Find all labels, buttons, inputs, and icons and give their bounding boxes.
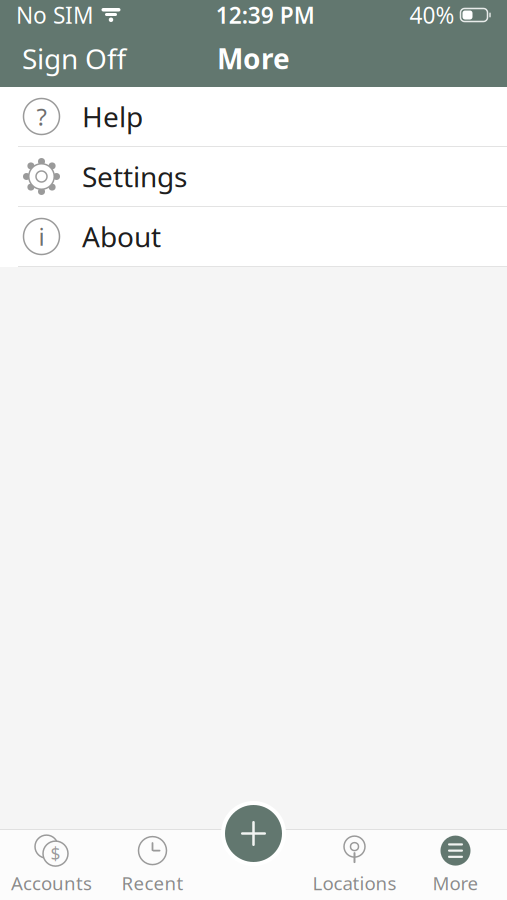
staticText: Accounts	[11, 871, 92, 895]
button[interactable]: Sign Off	[0, 30, 148, 87]
staticText: Recent	[121, 871, 183, 895]
staticText: Settings	[82, 158, 187, 195]
button[interactable]: More	[405, 830, 506, 900]
staticText: About	[82, 218, 161, 255]
staticText: More	[217, 40, 290, 77]
button[interactable]: Add	[221, 801, 286, 866]
staticText: Help	[82, 98, 143, 135]
button[interactable]: $	[1, 830, 102, 900]
staticText: ?	[36, 101, 46, 132]
staticText: 40%	[409, 0, 454, 30]
button[interactable]: ?	[0, 87, 507, 146]
button[interactable]: Recent	[102, 830, 203, 900]
staticText: No SIM	[16, 0, 94, 30]
staticText: More	[432, 871, 478, 895]
staticText: Sign Off	[22, 40, 126, 77]
button[interactable]: Settings	[0, 147, 507, 206]
staticText: 12:39 PM	[216, 0, 315, 30]
button[interactable]: i	[0, 207, 507, 266]
staticText: $	[50, 842, 60, 865]
staticText: i	[38, 221, 44, 252]
staticText: Locations	[312, 871, 396, 895]
button[interactable]: Locations	[304, 830, 405, 900]
